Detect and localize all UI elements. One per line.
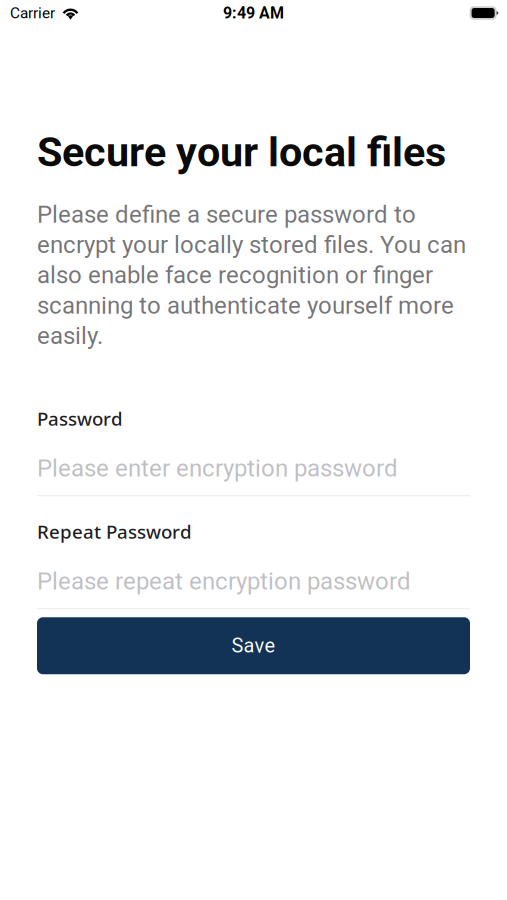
staticText: Password bbox=[37, 406, 123, 431]
staticText: Repeat Password bbox=[37, 519, 192, 544]
staticText: Carrier bbox=[10, 4, 55, 22]
button[interactable]: Repeat Password bbox=[37, 519, 470, 609]
staticText: Save bbox=[231, 634, 275, 657]
staticText: Please define a secure password to encry… bbox=[37, 200, 466, 350]
button[interactable]: Save bbox=[37, 617, 470, 674]
staticText: 9:49 AM bbox=[223, 4, 284, 22]
staticText: Please enter encryption password bbox=[37, 454, 398, 482]
staticText: Secure your local files bbox=[37, 128, 446, 176]
button[interactable]: Password bbox=[37, 406, 470, 496]
staticText: Please repeat encryption password bbox=[37, 567, 411, 595]
